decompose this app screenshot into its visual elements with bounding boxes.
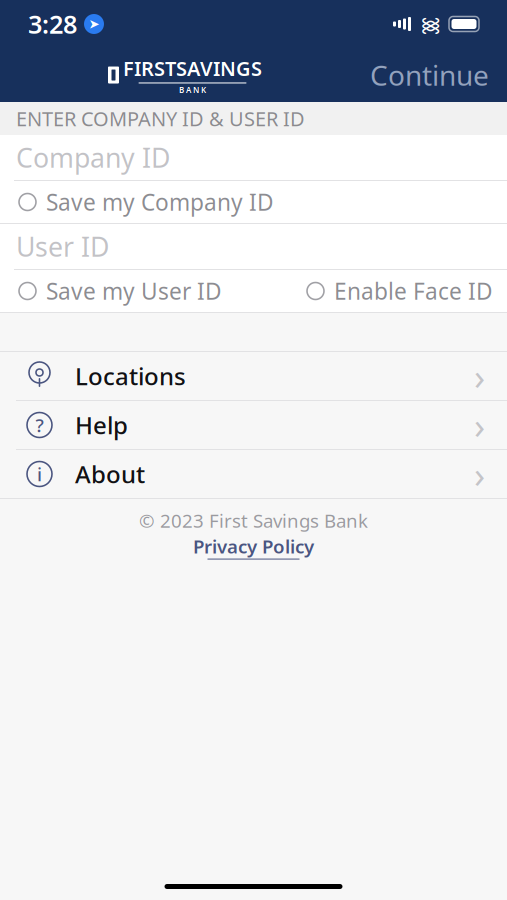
- staticText: Continue: [370, 56, 489, 94]
- staticText: ENTER COMPANY ID & USER ID: [16, 105, 305, 132]
- staticText: © 2023 First Savings Bank: [139, 508, 368, 533]
- staticText: 3:28: [28, 7, 77, 41]
- staticText: ›: [474, 450, 485, 498]
- staticText: Company ID: [16, 140, 170, 175]
- button[interactable]: Privacy Policy: [193, 534, 314, 560]
- staticText: FIRSTSAVINGS: [123, 55, 262, 81]
- button[interactable]: Save my Company ID: [19, 187, 274, 217]
- staticText: ›: [474, 401, 485, 449]
- staticText: ›: [474, 352, 485, 400]
- button[interactable]: ?: [0, 401, 507, 449]
- button[interactable]: Save my User ID: [19, 276, 222, 306]
- staticText: ᯼: [420, 11, 441, 37]
- staticText: Save my User ID: [46, 276, 222, 306]
- staticText: Help: [75, 409, 128, 441]
- staticText: User ID: [16, 229, 109, 264]
- button[interactable]: Locations: [0, 352, 507, 400]
- button[interactable]: Enable Face ID: [307, 276, 493, 306]
- staticText: About: [75, 458, 145, 490]
- staticText: Locations: [75, 360, 186, 392]
- staticText: ?: [35, 413, 43, 437]
- staticText: B A N K: [179, 84, 206, 95]
- staticText: Enable Face ID: [334, 276, 493, 306]
- staticText: Privacy Policy: [193, 534, 314, 559]
- button[interactable]: Continue: [370, 56, 489, 94]
- button[interactable]: i: [0, 450, 507, 498]
- staticText: ➤: [88, 16, 99, 31]
- staticText: i: [37, 462, 42, 486]
- staticText: Save my Company ID: [46, 187, 274, 217]
